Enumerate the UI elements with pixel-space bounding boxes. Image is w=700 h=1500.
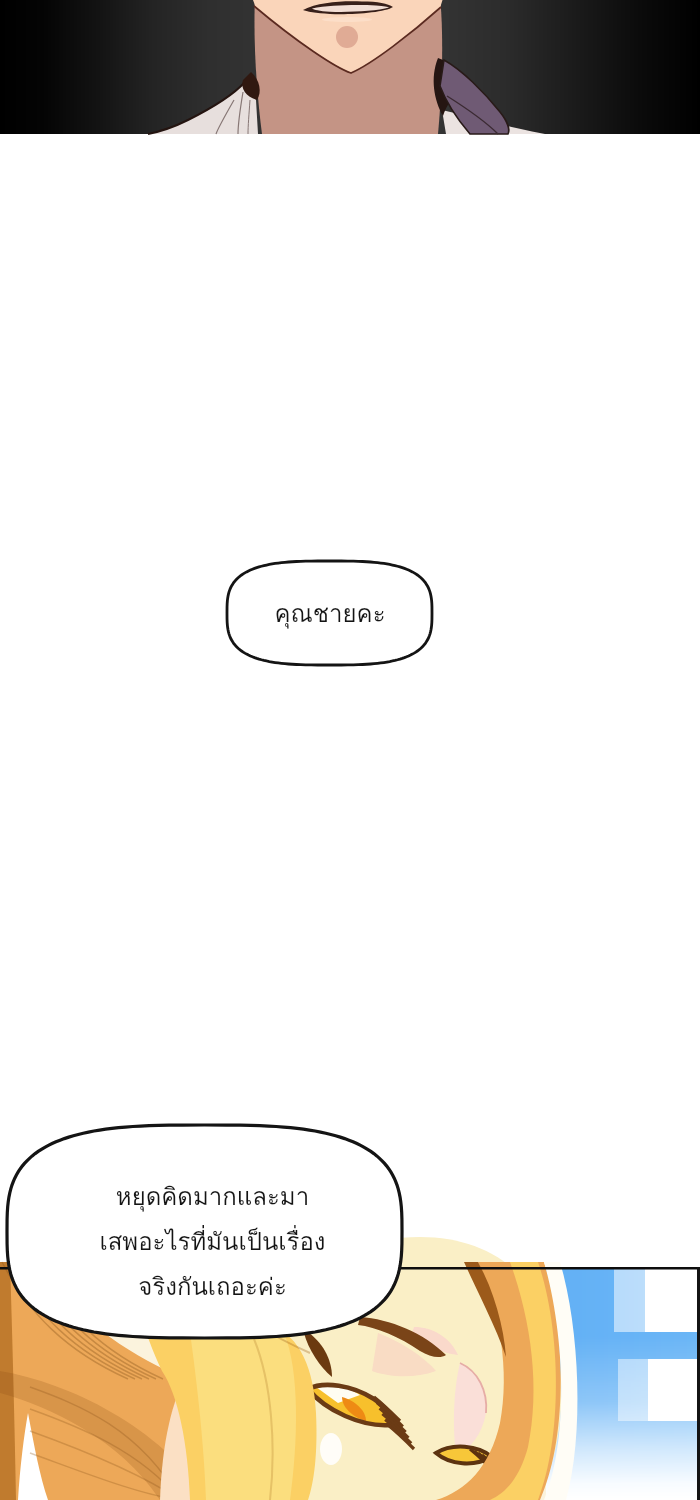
button[interactable]: Comic panel [0, 0, 700, 134]
staticText: หยุดคิดมากและมา เสพอะไรที่มันเป็นเรื่อง … [99, 1177, 326, 1305]
button[interactable]: หยุดคิดมากและมา เสพอะไรที่มันเป็นเรื่อง … [7, 1125, 402, 1338]
button[interactable]: คุณชายคะ [227, 561, 432, 665]
button[interactable]: Comic panel [0, 1267, 700, 1500]
staticText: คุณชายคะ [274, 594, 386, 632]
